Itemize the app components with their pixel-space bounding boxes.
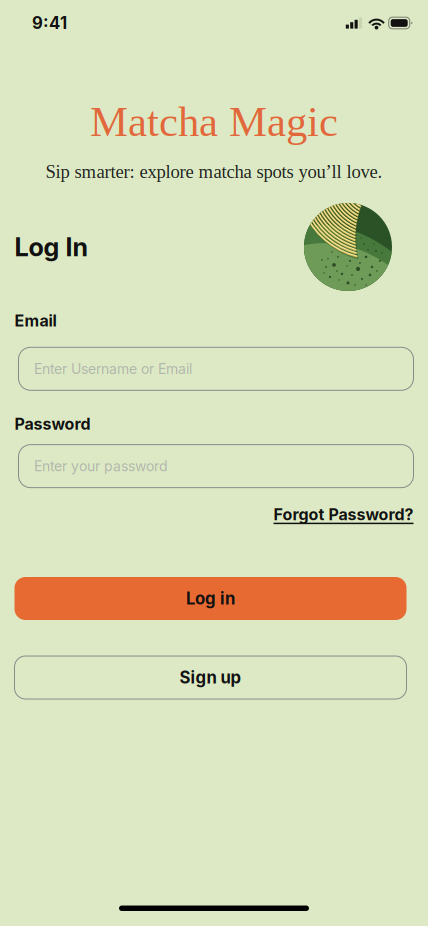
staticText: 9:41 xyxy=(32,13,67,33)
staticText: Enter your password xyxy=(34,458,168,475)
staticText: Email xyxy=(14,311,56,330)
staticText: Password xyxy=(14,414,90,434)
button[interactable]: Forgot Password? xyxy=(273,505,413,524)
button[interactable]: Log in xyxy=(14,577,406,620)
staticText: Log In xyxy=(14,232,88,262)
button[interactable]: Enter your password xyxy=(18,445,413,488)
staticText: Forgot Password? xyxy=(273,505,413,524)
staticText: Matcha Magic xyxy=(90,98,338,145)
staticText: Enter Username or Email xyxy=(34,360,192,377)
staticText: Sip smarter: explore matcha spots you’ll… xyxy=(45,161,382,182)
button[interactable]: Enter Username or Email xyxy=(18,347,413,390)
staticText: Log in xyxy=(186,588,235,609)
button[interactable]: Sign up xyxy=(14,656,406,699)
staticText: Sign up xyxy=(179,667,241,688)
